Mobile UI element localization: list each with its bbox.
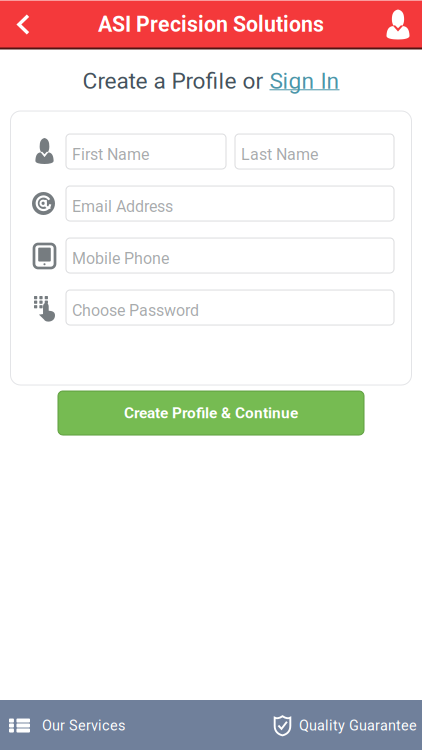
button[interactable]: Quality Guarantee [274,700,422,750]
button[interactable]: Create Profile & Continue [58,391,364,435]
staticText: Last Name [241,145,318,164]
staticText: Our Services [42,717,125,734]
staticText: Sign In [269,68,339,94]
button[interactable]: Our Services [0,700,180,750]
staticText: ASI Precision Solutions [98,12,324,37]
staticText: Email Address [72,197,173,216]
staticText: Choose Password [72,301,199,320]
button[interactable]: Back [0,0,46,48]
staticText: Create a Profile or [82,68,269,94]
staticText: Create Profile & Continue [124,404,298,422]
staticText: Quality Guarantee [299,717,417,734]
button[interactable]: Sign In [269,68,339,94]
button[interactable]: Account [379,0,417,48]
staticText: First Name [72,145,149,164]
staticText: Mobile Phone [72,249,169,268]
